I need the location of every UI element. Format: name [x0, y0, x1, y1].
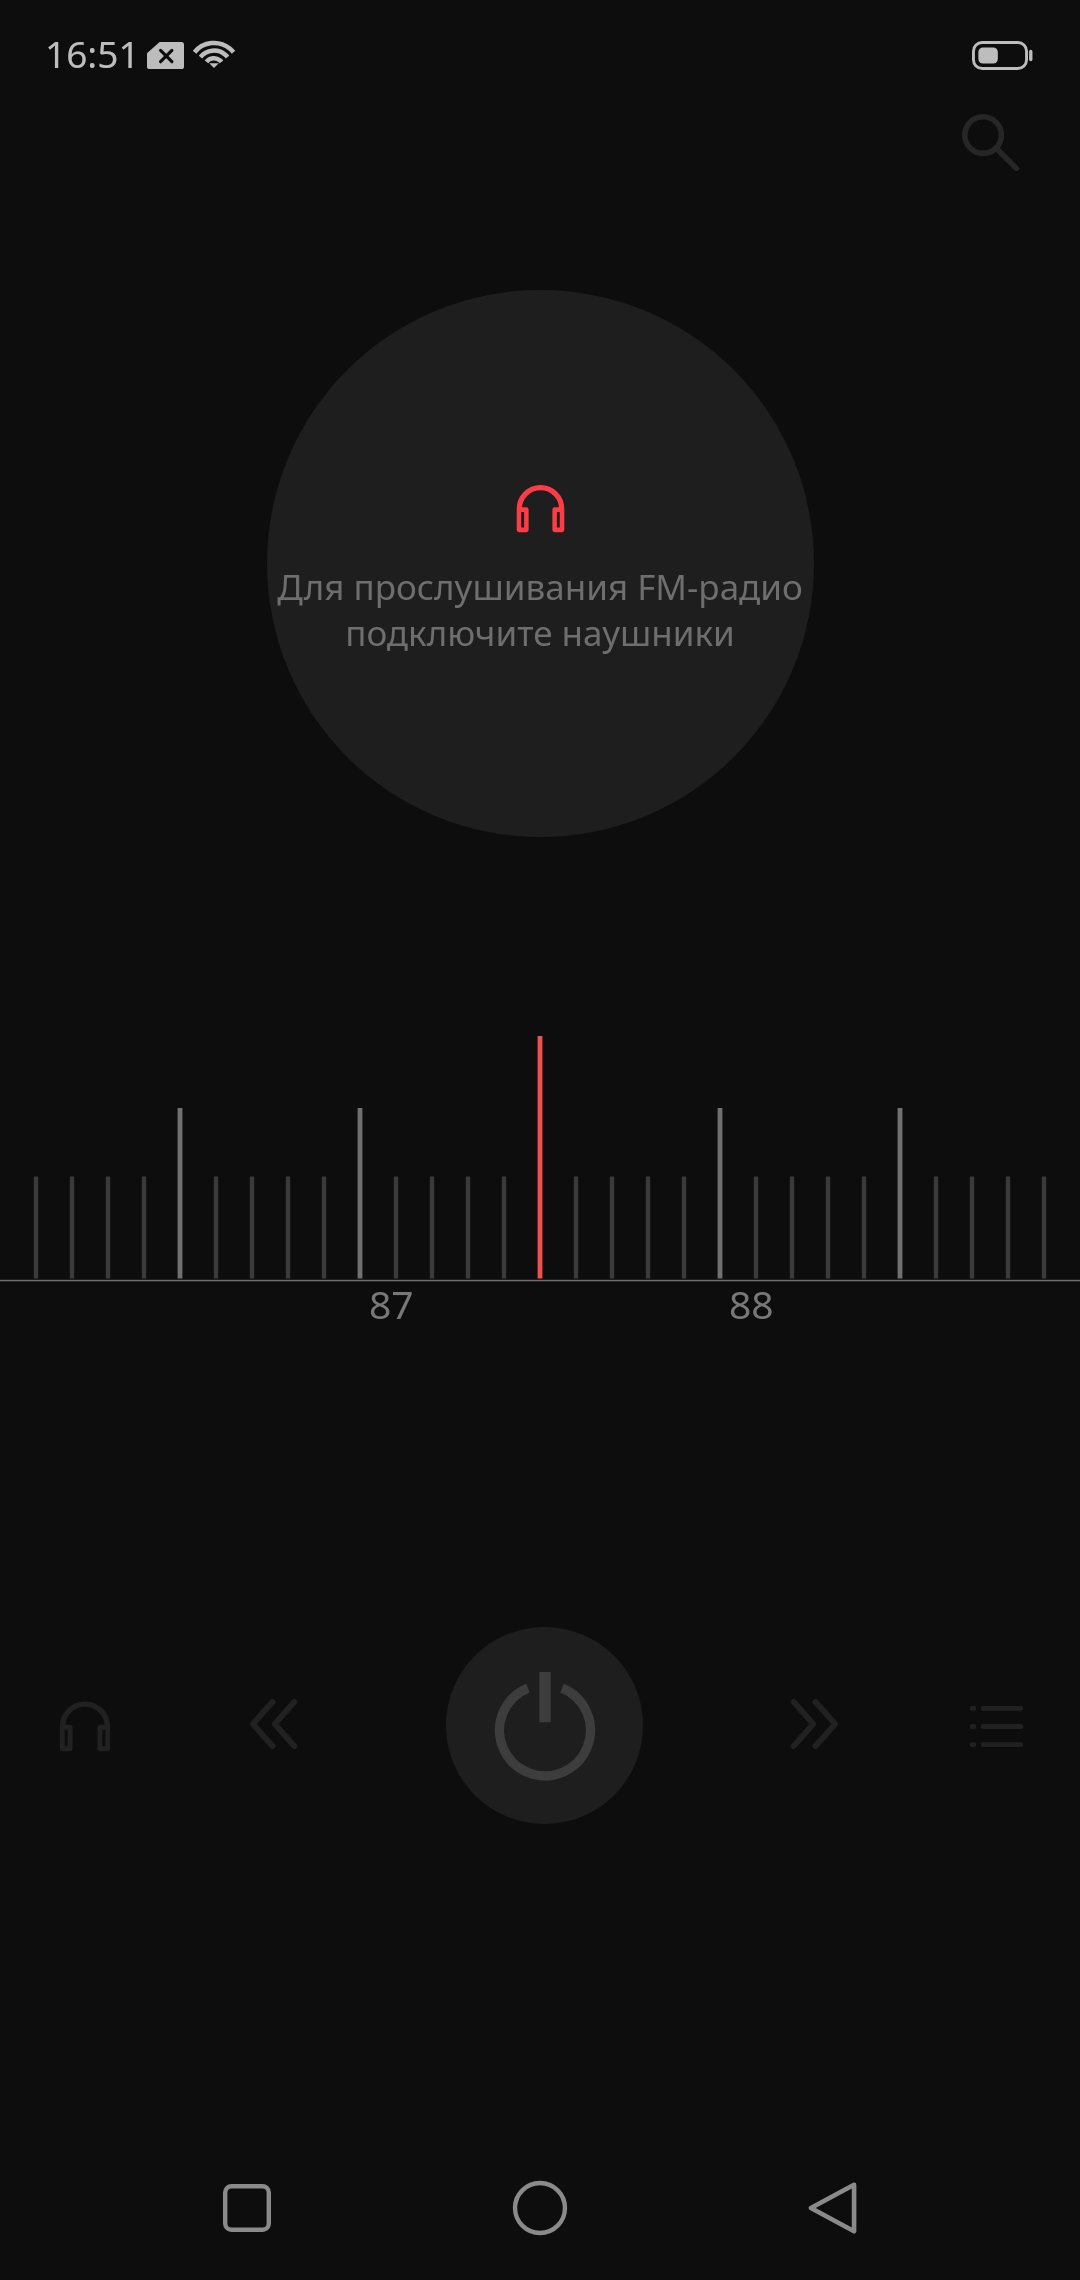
staticText: подключите наушники	[0, 609, 1080, 657]
staticText: 16:51	[45, 28, 140, 78]
staticText: 87	[369, 1277, 414, 1330]
button[interactable]: Previous station	[223, 1674, 323, 1774]
staticText: Для прослушивания FM-радио	[0, 563, 1080, 611]
button[interactable]: Recent apps	[197, 2158, 297, 2258]
button[interactable]: Headphones	[35, 1674, 135, 1774]
button[interactable]: Next station	[765, 1674, 865, 1774]
staticText: 88	[729, 1277, 774, 1330]
button[interactable]: Home	[490, 2158, 590, 2258]
button[interactable]: Power	[446, 1627, 643, 1824]
button[interactable]: Station list	[946, 1676, 1046, 1776]
button[interactable]: Back	[782, 2158, 882, 2258]
button[interactable]: Search	[936, 88, 1044, 196]
